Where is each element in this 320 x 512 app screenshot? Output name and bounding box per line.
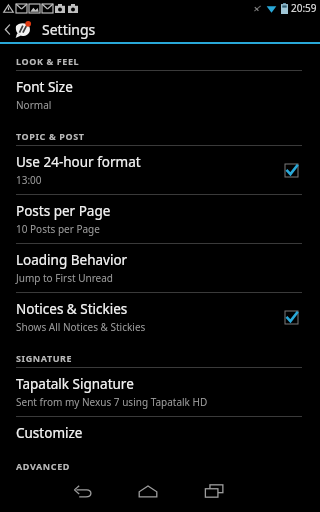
staticText: 20:59 bbox=[291, 1, 317, 15]
button[interactable]: Toggle Notices & Stickies bbox=[281, 307, 302, 328]
staticText: 10 Posts per Page bbox=[16, 222, 100, 236]
staticText: Notices & Stickies bbox=[16, 300, 128, 318]
staticText: ADVANCED bbox=[16, 460, 70, 470]
staticText: TOPIC & POST bbox=[16, 130, 85, 142]
staticText: Sent from my Nexus 7 using Tapatalk HD bbox=[16, 395, 208, 409]
button[interactable]: Font Size bbox=[0, 71, 320, 119]
button[interactable]: Notices & Stickies bbox=[0, 293, 320, 341]
staticText: LOOK & FEEL bbox=[16, 55, 80, 67]
staticText: SIGNATURE bbox=[16, 352, 73, 364]
button[interactable]: Navigate up bbox=[0, 16, 34, 42]
button[interactable]: Loading Behavior bbox=[0, 244, 320, 292]
button[interactable]: Tapatalk Signature bbox=[0, 368, 320, 416]
button[interactable]: Home bbox=[126, 470, 170, 512]
button[interactable]: Posts per Page bbox=[0, 195, 320, 243]
button[interactable]: Customize bbox=[0, 417, 320, 449]
staticText: Settings bbox=[42, 20, 96, 39]
button[interactable]: Back bbox=[60, 470, 104, 512]
button[interactable]: Recent apps bbox=[192, 470, 236, 512]
button[interactable]: Use 24-hour format bbox=[0, 146, 320, 194]
staticText: Normal bbox=[16, 98, 52, 112]
staticText: Use 24-hour format bbox=[16, 153, 141, 171]
button[interactable]: Toggle Use 24-hour format bbox=[281, 160, 302, 181]
staticText: Posts per Page bbox=[16, 202, 111, 220]
staticText: 13:00 bbox=[16, 173, 42, 187]
staticText: Loading Behavior bbox=[16, 251, 128, 269]
staticText: Customize bbox=[16, 424, 83, 442]
staticText: Font Size bbox=[16, 78, 73, 96]
staticText: Tapatalk Signature bbox=[16, 375, 134, 393]
staticText: Shows All Notices & Stickies bbox=[16, 320, 146, 334]
staticText: Jump to First Unread bbox=[16, 271, 113, 285]
